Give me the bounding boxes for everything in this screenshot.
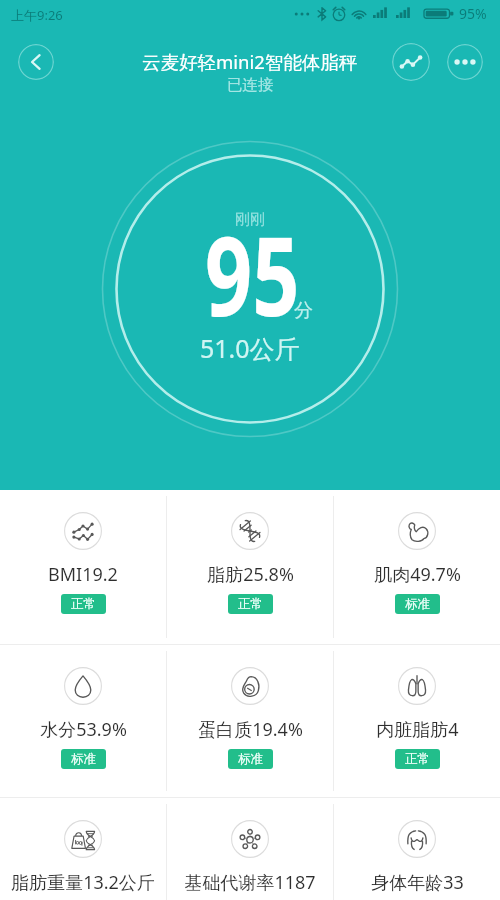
button[interactable]: 蛋白质19.4%	[167, 645, 333, 797]
staticText: 刚刚	[235, 210, 265, 229]
button[interactable]: 水分53.9%	[0, 645, 166, 797]
staticText: 正常	[71, 596, 96, 612]
staticText: 脂肪重量13.2公斤	[11, 870, 155, 895]
staticText: 上午9:26	[11, 6, 63, 24]
staticText: 蛋白质19.4%	[198, 717, 303, 742]
button[interactable]: 身体年龄33	[334, 798, 500, 900]
button[interactable]: 脂肪重量13.2公斤	[0, 798, 166, 900]
staticText: 正常	[238, 596, 263, 612]
staticText: 已连接	[227, 75, 274, 95]
staticText: 脂肪25.8%	[207, 562, 294, 587]
staticText: BMI19.2	[48, 562, 118, 587]
button[interactable]: 基础代谢率1187	[167, 798, 333, 900]
staticText: 标准	[405, 596, 430, 612]
button[interactable]: Back	[18, 44, 54, 80]
staticText: 51.0公斤	[200, 331, 300, 365]
button[interactable]: 肌肉49.7%	[334, 490, 500, 644]
staticText: 肌肉49.7%	[374, 562, 461, 587]
staticText: 标准	[71, 751, 96, 767]
staticText: 正常	[405, 751, 430, 767]
button[interactable]: 脂肪25.8%	[167, 490, 333, 644]
staticText: 身体年龄33	[371, 870, 464, 895]
staticText: 内脏脂肪4	[376, 717, 459, 742]
staticText: 分	[294, 299, 313, 323]
staticText: 云麦好轻mini2智能体脂秤	[142, 49, 358, 74]
button[interactable]: BMI19.2	[0, 490, 166, 644]
staticText: 95%	[459, 4, 487, 23]
staticText: 水分53.9%	[40, 717, 127, 742]
button[interactable]: 内脏脂肪4	[334, 645, 500, 797]
button[interactable]: More options	[447, 44, 483, 80]
staticText: 标准	[238, 751, 263, 767]
staticText: 基础代谢率1187	[184, 870, 316, 895]
button[interactable]: Trends	[392, 43, 430, 81]
staticText: 95	[205, 198, 299, 348]
